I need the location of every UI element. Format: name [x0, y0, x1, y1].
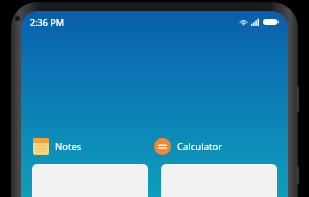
- button[interactable]: Calculator: [154, 136, 276, 157]
- staticText: Notes: [55, 140, 82, 153]
- button[interactable]: App preview: [32, 164, 148, 197]
- button[interactable]: Notes: [33, 136, 154, 157]
- button[interactable]: App preview: [161, 164, 277, 197]
- staticText: 2:36 PM: [30, 16, 64, 28]
- staticText: Calculator: [177, 140, 223, 153]
